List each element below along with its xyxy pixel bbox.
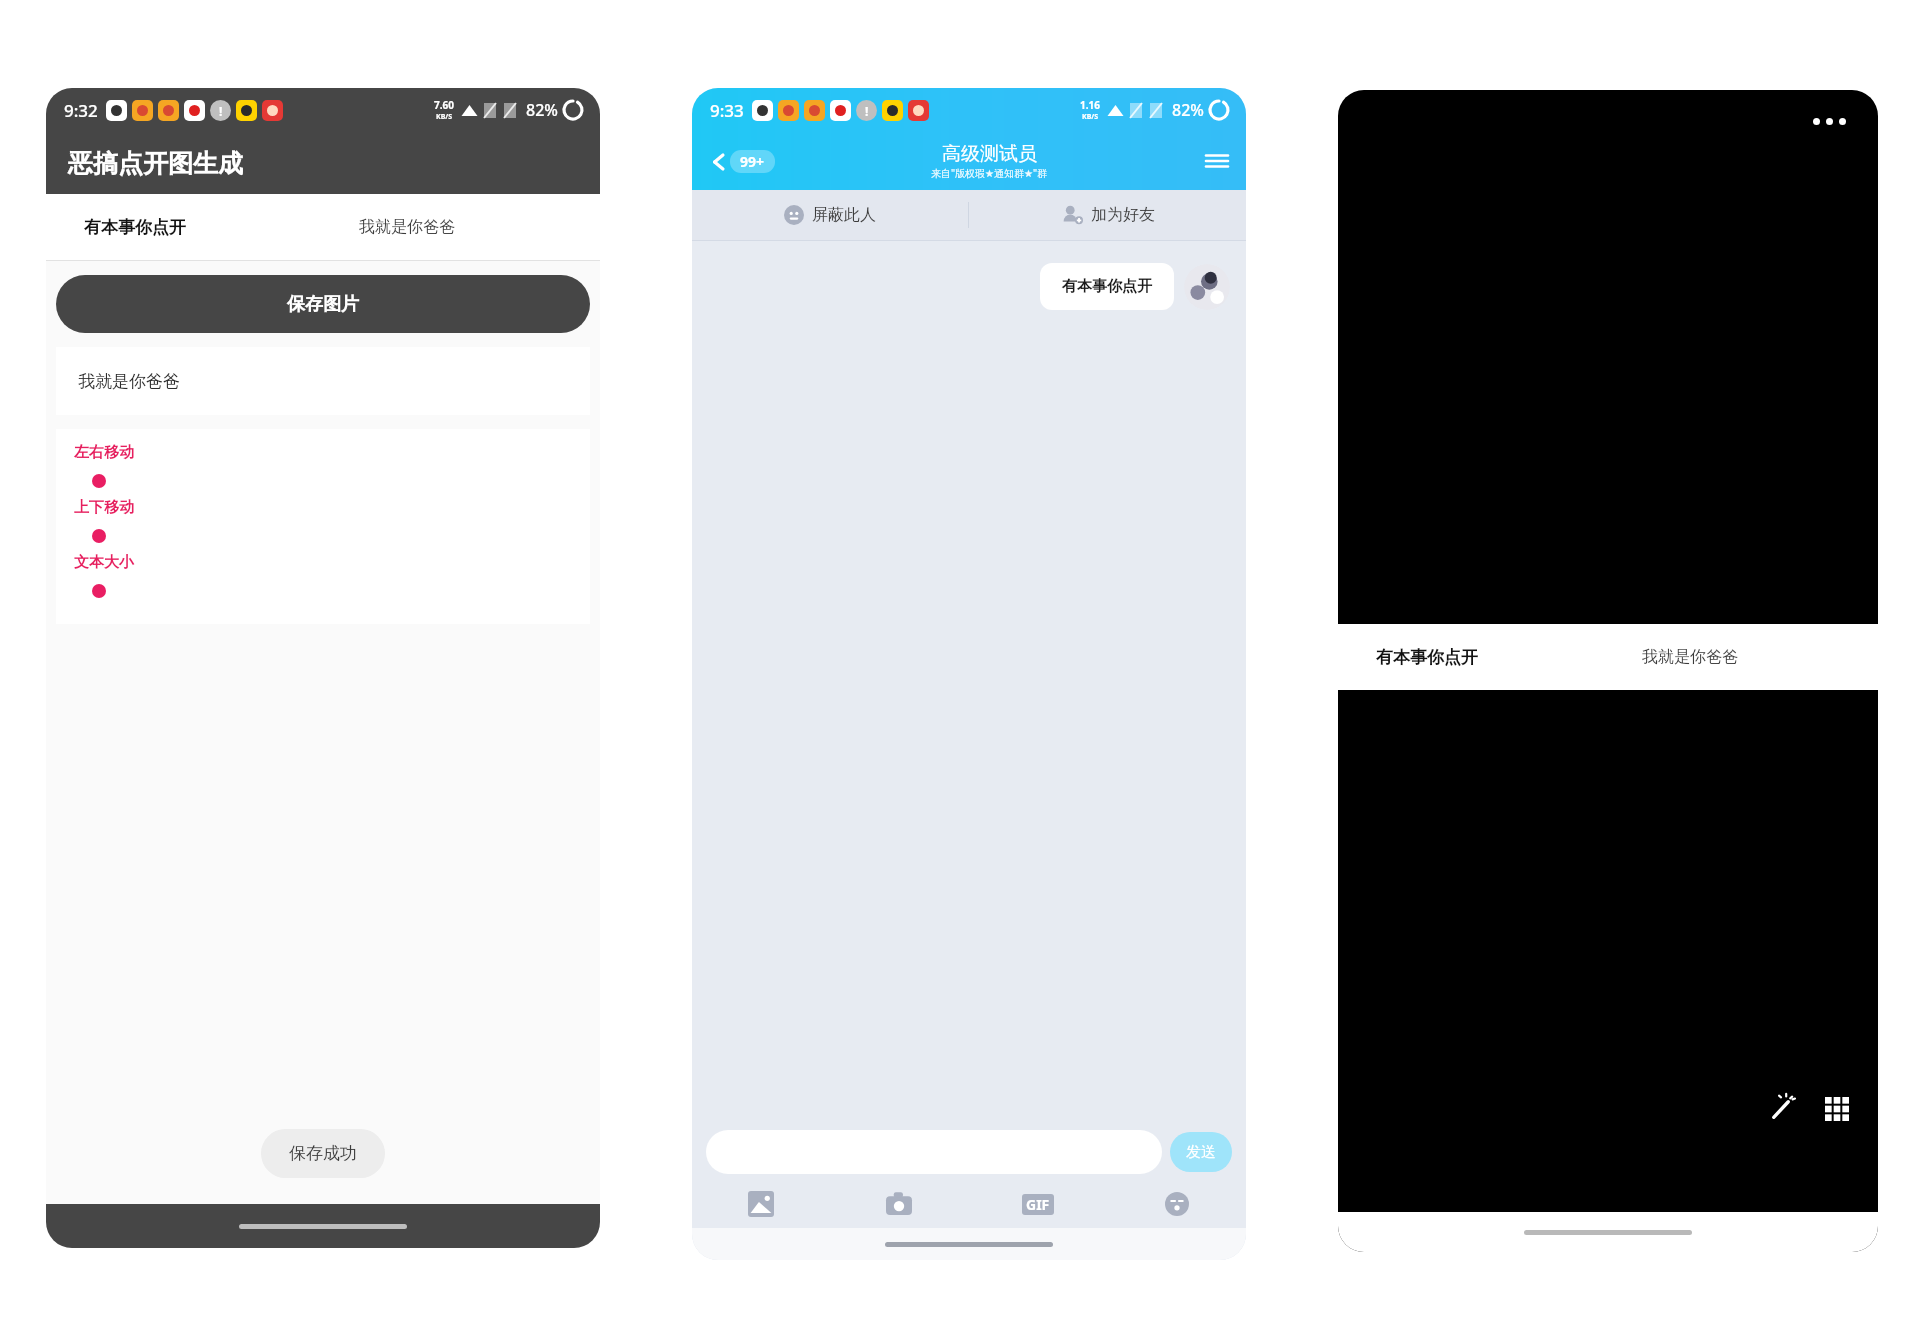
staticText: !: [865, 103, 869, 119]
staticText: 9:32: [64, 99, 98, 122]
staticText: 屏蔽此人: [812, 205, 876, 225]
button[interactable]: 有本事你点开: [84, 217, 186, 238]
button[interactable]: Grid: [1820, 1092, 1854, 1126]
button[interactable]: 我就是你爸爸: [359, 217, 455, 237]
staticText: !: [219, 103, 223, 119]
staticText: 有本事你点开: [1062, 277, 1152, 296]
staticText: KB/S: [436, 112, 453, 122]
staticText: GIF: [1026, 1195, 1050, 1214]
button[interactable]: 有本事你点开: [1376, 647, 1478, 668]
button[interactable]: Magic: [1764, 1092, 1798, 1126]
button[interactable]: [74, 523, 590, 549]
staticText: 左右移动: [74, 443, 134, 462]
staticText: 我就是你爸爸: [1642, 647, 1738, 667]
staticText: 99+: [740, 152, 765, 171]
staticText: 82%: [526, 99, 558, 121]
button[interactable]: GIF: [968, 1180, 1107, 1228]
button[interactable]: [74, 578, 590, 604]
staticText: 7.60: [434, 98, 454, 112]
staticText: KB/S: [1082, 112, 1099, 122]
button[interactable]: 我就是你爸爸: [56, 347, 590, 415]
staticText: 保存成功: [289, 1143, 357, 1164]
button[interactable]: Emoji: [1107, 1180, 1246, 1228]
staticText: 82%: [1172, 99, 1204, 121]
button[interactable]: More options: [1807, 112, 1852, 131]
staticText: 文本大小: [74, 553, 134, 572]
staticText: 我就是你爸爸: [359, 217, 455, 237]
staticText: 保存图片: [287, 293, 359, 316]
button[interactable]: 保存图片: [56, 275, 590, 333]
button[interactable]: [74, 468, 590, 494]
staticText: 上下移动: [74, 498, 134, 517]
button[interactable]: 加为好友: [969, 190, 1246, 240]
button[interactable]: 屏蔽此人: [692, 190, 968, 240]
button[interactable]: 我就是你爸爸: [1642, 647, 1738, 667]
button[interactable]: Camera: [830, 1180, 968, 1228]
staticText: 发送: [1186, 1143, 1216, 1162]
button[interactable]: Back: [708, 150, 775, 173]
button[interactable]: Menu: [1204, 148, 1230, 174]
staticText: 有本事你点开: [1376, 647, 1478, 668]
staticText: 高级测试员: [942, 142, 1037, 166]
staticText: 9:33: [710, 99, 744, 122]
button[interactable]: Image: [692, 1180, 830, 1228]
button[interactable]: 发送: [1170, 1132, 1232, 1172]
staticText: 有本事你点开: [84, 217, 186, 238]
staticText: 来自"版权瑕★通知群★"群: [931, 166, 1048, 180]
staticText: 1.16: [1080, 98, 1100, 112]
staticText: 加为好友: [1091, 205, 1155, 225]
button[interactable]: 有本事你点开: [1040, 263, 1174, 310]
staticText: 我就是你爸爸: [78, 371, 180, 392]
button[interactable]: [706, 1130, 1162, 1174]
staticText: 恶搞点开图生成: [68, 148, 243, 179]
